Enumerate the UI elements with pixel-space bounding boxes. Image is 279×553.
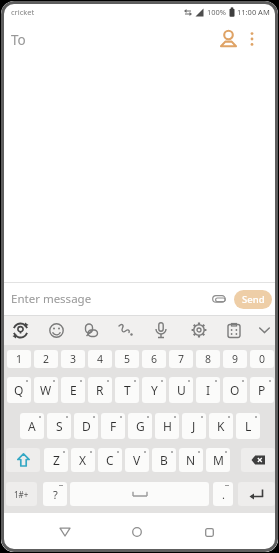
button[interactable]: H — [155, 413, 179, 439]
button[interactable]: U — [169, 377, 193, 403]
button[interactable] — [51, 518, 79, 546]
staticText: Q — [14, 382, 24, 398]
staticText: M — [213, 452, 224, 468]
staticText: Enter message — [11, 291, 92, 307]
button[interactable]: 7 — [169, 350, 193, 368]
staticText: L — [245, 418, 252, 434]
staticText: 11:00 AM — [237, 7, 270, 17]
staticText: G — [136, 418, 145, 434]
button[interactable]: O — [223, 377, 247, 403]
staticText: 6 — [151, 352, 158, 366]
staticText: 100% — [207, 7, 227, 17]
staticText: W — [40, 382, 52, 398]
button[interactable]: C — [98, 448, 122, 472]
button[interactable]: 0 — [250, 350, 274, 368]
button[interactable]: 4 — [88, 350, 112, 368]
staticText: T — [124, 382, 131, 398]
button[interactable] — [43, 317, 69, 343]
button[interactable] — [221, 317, 247, 343]
button[interactable]: 1#+ — [6, 482, 37, 506]
staticText: 1#+ — [14, 489, 29, 500]
button[interactable]: J — [182, 413, 206, 439]
button[interactable]: D — [74, 413, 98, 439]
staticText: B — [160, 452, 168, 468]
staticText: Y — [151, 382, 158, 398]
staticText: 1 — [16, 352, 23, 366]
staticText: . — [222, 487, 225, 502]
button[interactable] — [195, 518, 223, 546]
staticText: To — [11, 31, 26, 49]
button[interactable] — [113, 317, 139, 343]
button[interactable]: M — [206, 448, 230, 472]
button[interactable] — [238, 482, 275, 506]
button[interactable] — [241, 448, 275, 472]
staticText: V — [133, 452, 141, 468]
button[interactable] — [186, 317, 212, 343]
button[interactable] — [251, 317, 277, 343]
staticText: 0 — [259, 352, 266, 366]
button[interactable]: S — [47, 413, 71, 439]
button[interactable]: ? — [43, 482, 67, 506]
staticText: X — [79, 452, 87, 468]
staticText: A — [28, 418, 36, 434]
button[interactable]: Y — [142, 377, 166, 403]
staticText: S — [56, 418, 63, 434]
staticText: H — [163, 418, 172, 434]
staticText: 4 — [97, 352, 104, 366]
button[interactable]: 2 — [34, 350, 58, 368]
button[interactable] — [7, 317, 33, 343]
button[interactable]: Z — [44, 448, 68, 472]
button[interactable]: V — [125, 448, 149, 472]
staticText: F — [110, 418, 117, 434]
button[interactable] — [6, 448, 40, 472]
button[interactable] — [215, 26, 241, 52]
staticText: Send — [242, 293, 265, 306]
button[interactable]: 5 — [115, 350, 139, 368]
staticText: C — [106, 452, 114, 468]
button[interactable]: T — [115, 377, 139, 403]
button[interactable]: K — [209, 413, 233, 439]
staticText: J — [192, 418, 196, 434]
button[interactable]: 9 — [223, 350, 247, 368]
staticText: N — [186, 452, 196, 468]
button[interactable]: A — [20, 413, 44, 439]
staticText: 3 — [70, 352, 77, 366]
button[interactable]: P — [250, 377, 274, 403]
button[interactable] — [148, 317, 174, 343]
button[interactable]: F — [101, 413, 125, 439]
staticText: P — [258, 382, 266, 398]
staticText: ? — [53, 487, 58, 502]
button[interactable]: I — [196, 377, 220, 403]
staticText: 7 — [178, 352, 185, 366]
button[interactable] — [70, 482, 209, 506]
button[interactable]: N — [179, 448, 203, 472]
staticText: U — [177, 382, 186, 398]
button[interactable]: 6 — [142, 350, 166, 368]
staticText: 8 — [205, 352, 212, 366]
button[interactable] — [243, 30, 261, 48]
staticText: 9 — [232, 352, 239, 366]
button[interactable] — [78, 317, 104, 343]
button[interactable]: Q — [7, 377, 31, 403]
button[interactable]: 8 — [196, 350, 220, 368]
button[interactable]: E — [61, 377, 85, 403]
staticText: O — [230, 382, 240, 398]
button[interactable]: 1 — [7, 350, 31, 368]
staticText: K — [217, 418, 225, 434]
staticText: E — [70, 382, 77, 398]
button[interactable]: X — [71, 448, 95, 472]
button[interactable]: W — [34, 377, 58, 403]
button[interactable]: G — [128, 413, 152, 439]
button[interactable] — [123, 518, 151, 546]
button[interactable]: L — [236, 413, 260, 439]
staticText: Z — [53, 452, 60, 468]
button[interactable]: 3 — [61, 350, 85, 368]
button[interactable]: . — [213, 482, 233, 506]
button[interactable]: Send — [234, 290, 272, 309]
staticText: D — [82, 418, 91, 434]
button[interactable] — [209, 289, 229, 309]
staticText: cricket — [11, 7, 35, 17]
staticText: 2 — [43, 352, 50, 366]
button[interactable]: B — [152, 448, 176, 472]
button[interactable]: R — [88, 377, 112, 403]
